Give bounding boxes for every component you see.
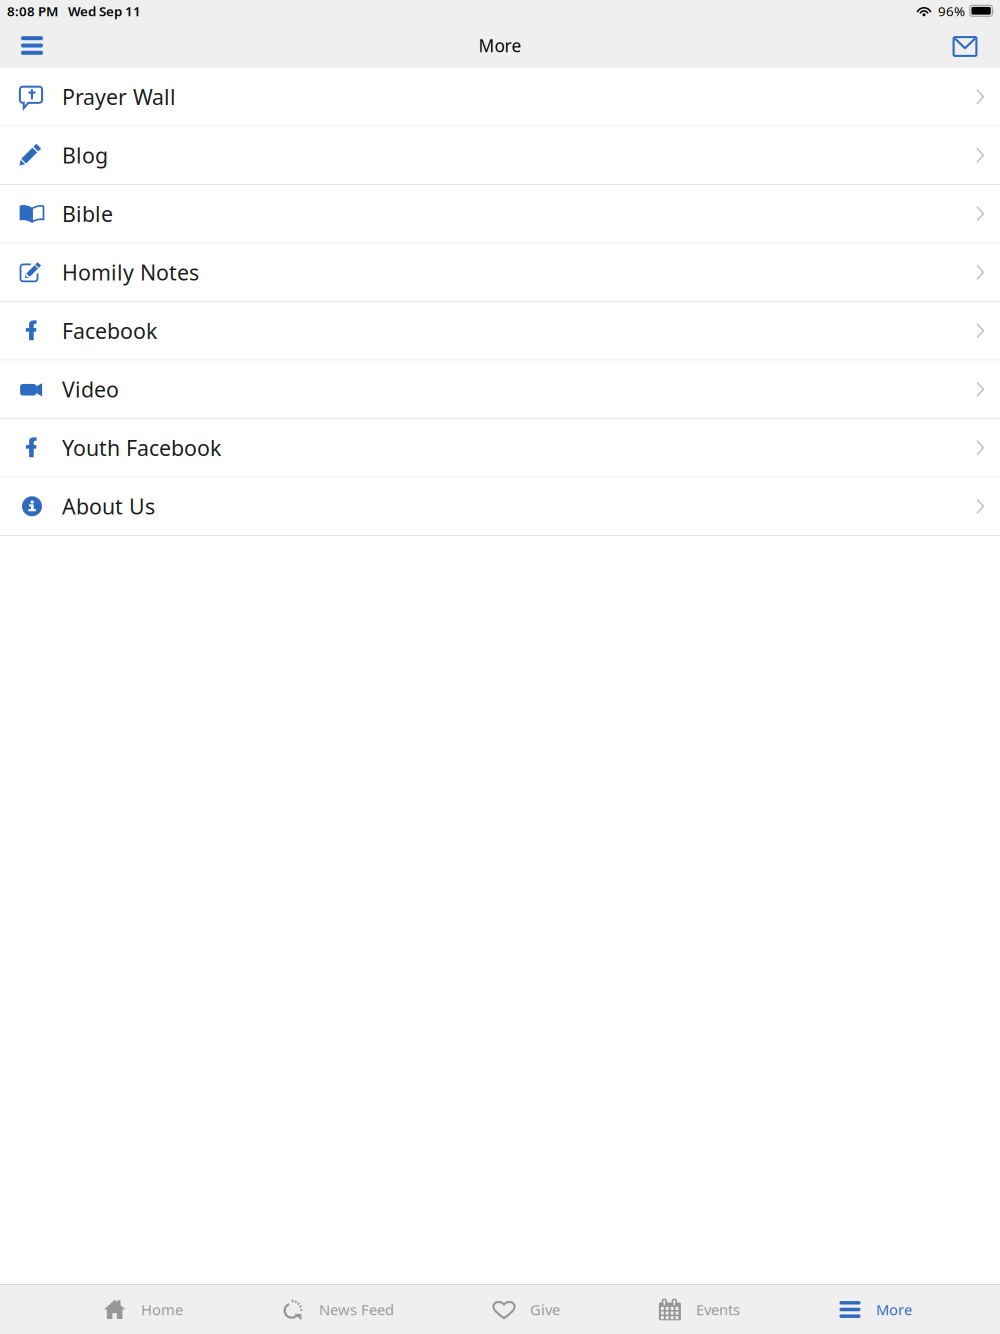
staticText: 96% [938,2,965,20]
staticText: About Us [62,492,155,520]
button[interactable]: Menu [6,21,58,68]
button[interactable]: Give [491,1285,560,1334]
button[interactable]: Blog [0,126,1000,185]
button[interactable]: Video [0,360,1000,419]
button[interactable]: More [837,1285,912,1334]
button[interactable]: Events [657,1285,740,1334]
button[interactable]: Bible [0,185,1000,243]
button[interactable]: Prayer Wall [0,68,1000,126]
button[interactable]: Facebook [0,302,1000,360]
staticText: News Feed [319,1300,394,1319]
staticText: Prayer Wall [62,83,176,111]
staticText: Give [530,1300,560,1319]
button[interactable]: About Us [0,477,1000,536]
button[interactable]: Youth Facebook [0,419,1000,477]
button[interactable]: Messages [939,20,991,69]
staticText: More [876,1300,912,1319]
staticText: Events [696,1300,740,1319]
button[interactable]: Home [102,1285,183,1334]
staticText: 8:08 PM [7,2,58,20]
staticText: Homily Notes [62,258,199,286]
staticText: Bible [62,200,113,228]
staticText: Wed Sep 11 [68,2,141,20]
staticText: More [478,34,521,57]
staticText: Video [62,375,119,403]
button[interactable]: Homily Notes [0,243,1000,302]
staticText: Home [141,1300,183,1319]
staticText: Facebook [62,317,157,345]
staticText: Blog [62,141,108,169]
staticText: Youth Facebook [62,434,221,462]
button[interactable]: News Feed [280,1285,394,1334]
